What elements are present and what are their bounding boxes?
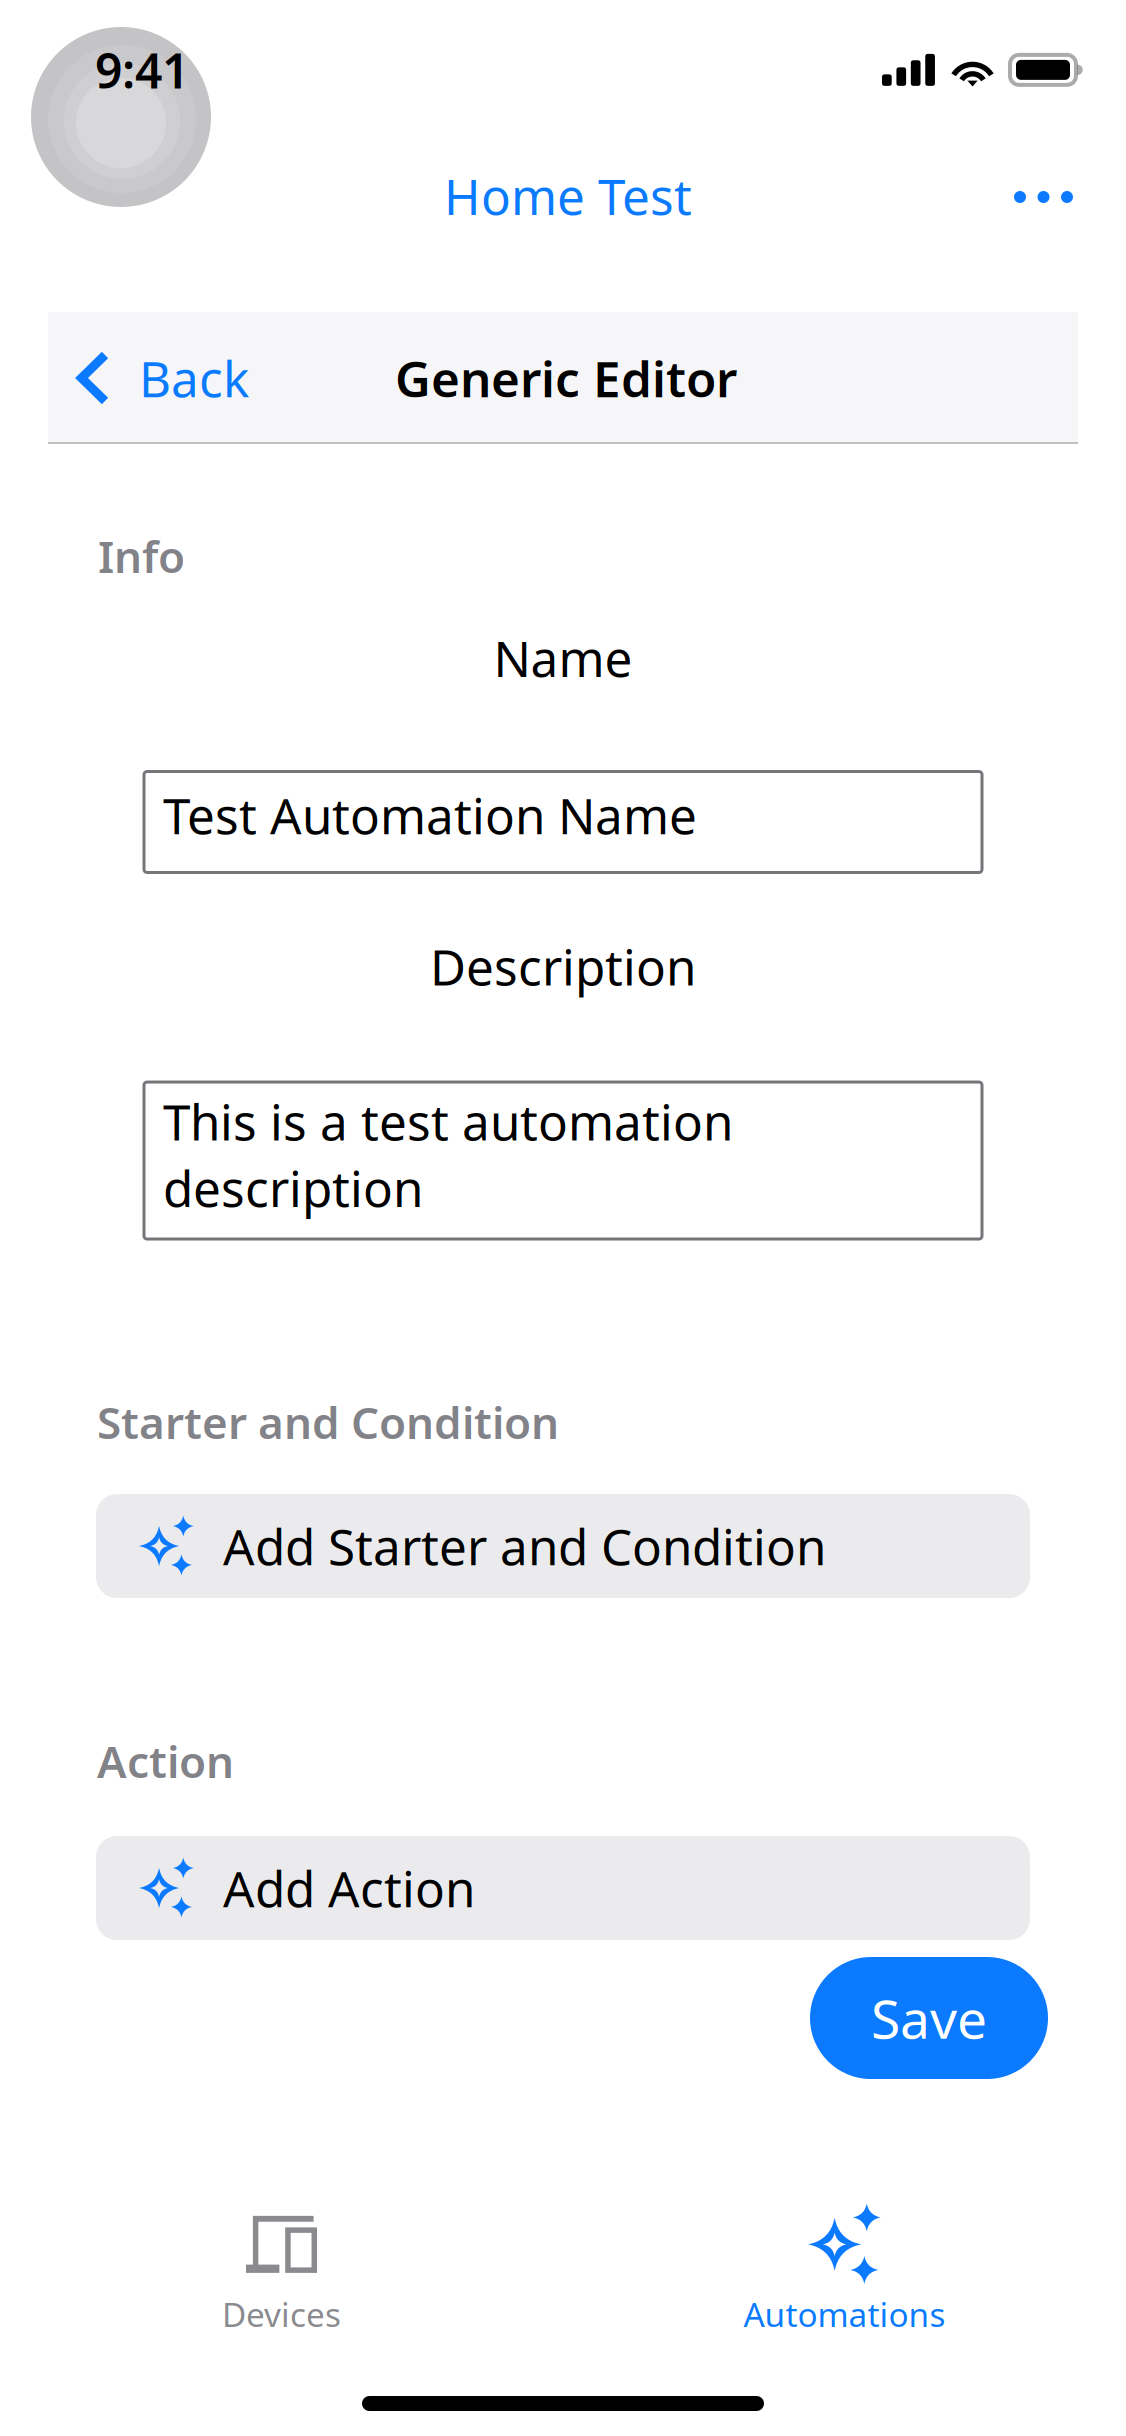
staticText: description xyxy=(163,1155,423,1220)
button[interactable]: Home Test xyxy=(430,151,706,240)
button[interactable]: Devices xyxy=(0,2201,563,2341)
staticText: Description xyxy=(430,933,696,999)
staticText: Add Action xyxy=(223,1855,475,1921)
staticText: Test Automation Name xyxy=(163,782,697,848)
staticText: Save xyxy=(871,1983,987,2053)
staticText: Home Test xyxy=(444,163,692,228)
button[interactable]: More options xyxy=(990,163,1097,231)
staticText: Add Starter and Condition xyxy=(223,1513,826,1579)
staticText: Starter and Condition xyxy=(97,1393,559,1451)
staticText: Automations xyxy=(743,2292,945,2336)
button[interactable]: Back xyxy=(48,312,267,444)
button[interactable]: Add Starter and Condition xyxy=(96,1494,1030,1598)
button[interactable]: Add Action xyxy=(96,1836,1030,1940)
staticText: 9:41 xyxy=(95,38,189,102)
staticText: Action xyxy=(97,1732,234,1790)
staticText: Name xyxy=(493,625,632,690)
staticText: Info xyxy=(98,527,185,585)
staticText: Generic Editor xyxy=(395,345,737,411)
button[interactable]: Save xyxy=(810,1957,1048,2079)
staticText: This is a test automation xyxy=(163,1088,733,1154)
staticText: Devices xyxy=(222,2292,341,2336)
button[interactable]: Automations xyxy=(563,2201,1126,2341)
staticText: Back xyxy=(139,345,249,411)
